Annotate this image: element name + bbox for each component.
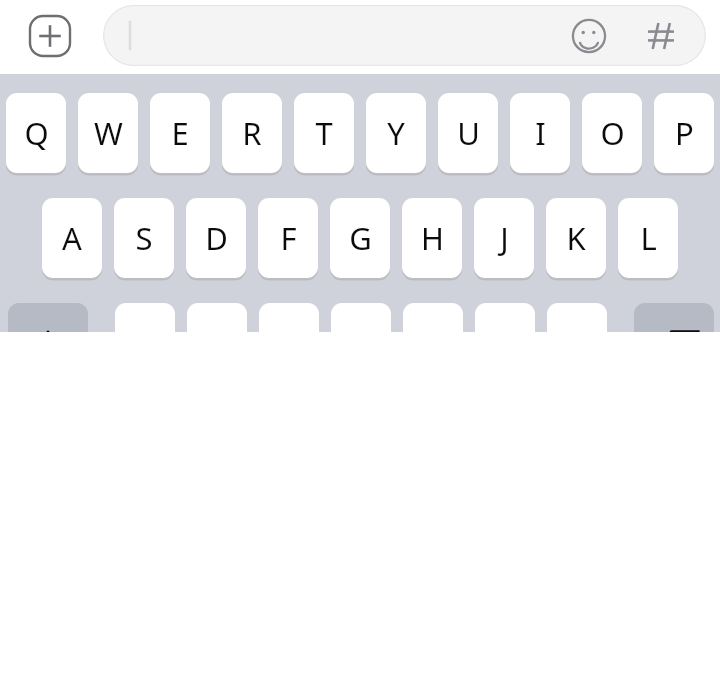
button[interactable] xyxy=(103,5,706,66)
staticText: P xyxy=(675,112,694,154)
button[interactable]: G xyxy=(330,198,390,278)
staticText: W xyxy=(94,112,123,154)
button[interactable]: Backspace xyxy=(634,303,714,383)
button[interactable]: H xyxy=(402,198,462,278)
button[interactable]: M xyxy=(547,303,607,383)
button[interactable]: L xyxy=(618,198,678,278)
staticText: T xyxy=(315,112,333,154)
button[interactable]: B xyxy=(403,303,463,383)
staticText: G xyxy=(349,217,372,259)
button[interactable]: K xyxy=(546,198,606,278)
button[interactable]: Y xyxy=(366,93,426,173)
button[interactable]: D xyxy=(186,198,246,278)
button[interactable]: W xyxy=(78,93,138,173)
button[interactable]: Hashtag xyxy=(637,12,685,60)
button[interactable]: X xyxy=(187,303,247,383)
staticText: Q xyxy=(24,112,49,154)
staticText: I xyxy=(535,112,546,154)
button[interactable]: Shift xyxy=(8,303,88,383)
button[interactable]: A xyxy=(42,198,102,278)
button[interactable]: N xyxy=(475,303,535,383)
button[interactable]: I xyxy=(510,93,570,173)
button[interactable]: T xyxy=(294,93,354,173)
staticText: D xyxy=(205,217,228,259)
staticText: K xyxy=(566,217,586,259)
button[interactable]: S xyxy=(114,198,174,278)
button[interactable]: Z xyxy=(115,303,175,383)
button[interactable]: R xyxy=(222,93,282,173)
staticText: O xyxy=(600,112,625,154)
button[interactable]: U xyxy=(438,93,498,173)
staticText: A xyxy=(62,217,82,259)
staticText: H xyxy=(421,217,444,259)
staticText: E xyxy=(171,112,189,154)
button[interactable]: E xyxy=(150,93,210,173)
button[interactable]: V xyxy=(331,303,391,383)
staticText: S xyxy=(135,217,153,259)
button[interactable]: Emoji xyxy=(565,12,613,60)
button[interactable]: J xyxy=(474,198,534,278)
staticText: J xyxy=(500,217,509,259)
staticText: Y xyxy=(387,112,405,154)
staticText: L xyxy=(640,217,657,259)
staticText: R xyxy=(242,112,262,154)
button[interactable]: Q xyxy=(6,93,66,173)
button[interactable]: P xyxy=(654,93,714,173)
staticText: F xyxy=(280,217,297,259)
button[interactable]: F xyxy=(258,198,318,278)
button[interactable]: O xyxy=(582,93,642,173)
button[interactable]: Add attachment xyxy=(27,13,73,59)
button[interactable]: C xyxy=(259,303,319,383)
staticText: U xyxy=(457,112,480,154)
